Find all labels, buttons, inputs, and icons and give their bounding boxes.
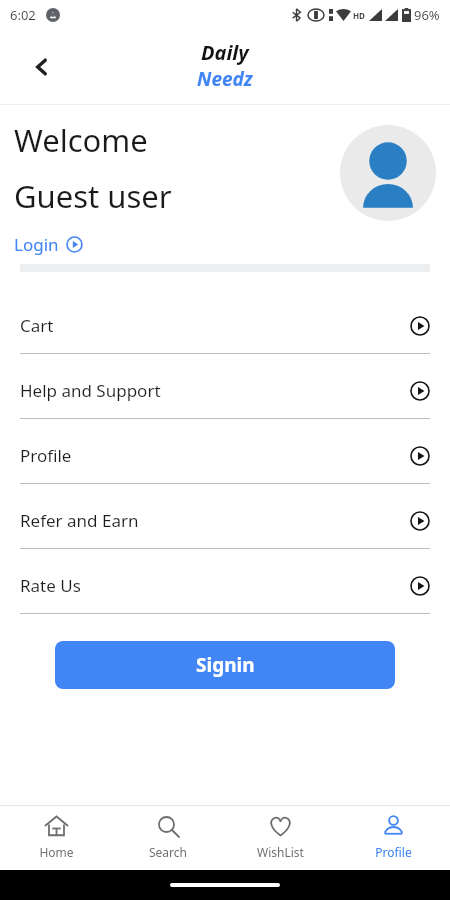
staticText: Needz — [197, 66, 253, 92]
staticText: Help and Support — [20, 379, 161, 402]
button[interactable]: Search — [112, 806, 224, 870]
button[interactable]: Home — [0, 806, 112, 870]
staticText: Profile — [375, 844, 412, 860]
staticText: Signin — [196, 652, 255, 678]
button[interactable]: Cart — [20, 298, 430, 354]
staticText: 6:02 — [10, 6, 36, 24]
staticText: WishList — [257, 844, 304, 860]
button[interactable]: WishList — [224, 806, 337, 870]
button[interactable]: Profile — [337, 806, 450, 870]
staticText: HD — [353, 10, 365, 21]
button[interactable]: Help and Support — [20, 363, 430, 419]
button[interactable]: Login — [14, 233, 89, 256]
staticText: Refer and Earn — [20, 509, 139, 532]
staticText: Login — [14, 233, 59, 256]
staticText: Home — [39, 844, 74, 860]
staticText: Search — [149, 844, 187, 860]
staticText: Welcome — [14, 119, 148, 161]
staticText: Profile — [20, 444, 72, 467]
staticText: Rate Us — [20, 574, 81, 597]
button[interactable]: Back — [20, 45, 64, 89]
staticText: 96% — [414, 6, 440, 24]
staticText: Daily — [201, 39, 249, 66]
button[interactable]: Refer and Earn — [20, 493, 430, 549]
staticText: Cart — [20, 314, 54, 337]
staticText: Guest user — [14, 175, 172, 217]
button[interactable]: Profile picture — [340, 125, 436, 221]
button[interactable]: Rate Us — [20, 558, 430, 614]
button[interactable]: Profile — [20, 428, 430, 484]
button[interactable]: Signin — [55, 641, 395, 689]
